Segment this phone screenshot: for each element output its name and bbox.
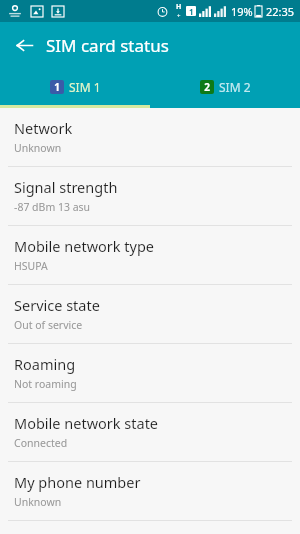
button[interactable]: 1 [0, 68, 150, 105]
button[interactable]: My phone number [0, 462, 300, 520]
staticText: Service state [14, 295, 100, 315]
staticText: SIM 1 [69, 79, 101, 95]
staticText: Signal strength [14, 177, 118, 197]
staticText: SIM card status [46, 34, 169, 57]
staticText: H [176, 2, 182, 12]
staticText: Mobile network type [14, 236, 155, 256]
button[interactable]: Service state [0, 285, 300, 343]
staticText: HSUPA [14, 259, 48, 273]
staticText: Connected [14, 436, 68, 450]
staticText: My phone number [14, 472, 141, 492]
staticText: -87 dBm 13 asu [14, 200, 91, 214]
staticText: 2 [204, 80, 210, 94]
staticText: Roaming [14, 354, 76, 374]
staticText: 22:35 [266, 4, 295, 19]
staticText: Mobile network state [14, 413, 159, 433]
staticText: 1 [189, 6, 194, 16]
button[interactable]: Mobile network state [0, 403, 300, 461]
staticText: Network [14, 118, 73, 138]
staticText: Out of service [14, 318, 83, 332]
staticText: SIM 2 [219, 79, 251, 95]
button[interactable]: Navigate up [6, 27, 42, 63]
staticText: Unknown [14, 141, 62, 155]
button[interactable]: Roaming [0, 344, 300, 402]
button[interactable]: Mobile network type [0, 226, 300, 284]
staticText: + [177, 12, 181, 20]
button[interactable]: 2 [150, 68, 300, 105]
staticText: 1 [54, 80, 60, 94]
staticText: Unknown [14, 495, 62, 509]
staticText: Not roaming [14, 377, 77, 391]
staticText: 19% [231, 4, 253, 19]
button[interactable]: Network [0, 108, 300, 166]
button[interactable]: Signal strength [0, 167, 300, 225]
